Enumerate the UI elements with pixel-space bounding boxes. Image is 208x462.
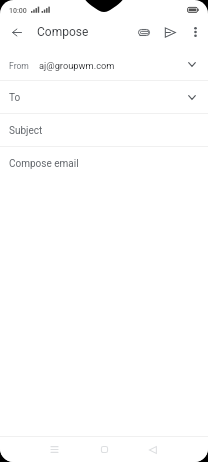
button[interactable]: Home xyxy=(93,438,116,461)
button[interactable]: Recent apps xyxy=(43,438,66,461)
button[interactable]: Send xyxy=(159,21,181,43)
button[interactable]: Navigate up xyxy=(6,21,28,43)
button[interactable]: More options xyxy=(184,21,206,43)
staticText: Subject xyxy=(9,125,43,137)
button[interactable]: Compose email xyxy=(0,147,208,179)
staticText: To xyxy=(9,92,21,104)
button[interactable]: To xyxy=(0,81,208,113)
button[interactable]: Attach file xyxy=(131,21,153,43)
staticText: aj@groupwm.com xyxy=(39,60,115,71)
staticText: From xyxy=(9,61,29,71)
button[interactable]: From xyxy=(0,48,208,80)
button[interactable]: Back xyxy=(141,438,164,461)
button[interactable]: Expand recipients xyxy=(183,55,201,73)
staticText: Compose xyxy=(37,25,89,39)
staticText: Compose email xyxy=(9,158,79,170)
button[interactable]: Expand recipients xyxy=(183,88,201,106)
staticText: 10:00 xyxy=(9,7,27,15)
button[interactable]: Subject xyxy=(0,114,208,146)
